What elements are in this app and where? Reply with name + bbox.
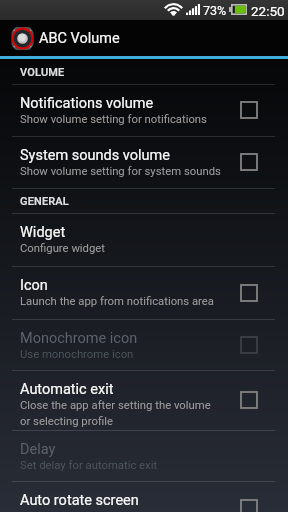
button[interactable]: Auto rotate screen xyxy=(0,482,288,512)
staticText: Notifications volume xyxy=(20,95,154,112)
staticText: Show volume setting for system sounds xyxy=(20,165,225,178)
staticText: Auto rotate screen xyxy=(20,492,139,509)
button[interactable]: Automatic exit xyxy=(240,391,258,409)
staticText: Set delay for automatic exit xyxy=(20,459,225,472)
staticText: VOLUME xyxy=(20,66,65,79)
button[interactable]: System sounds volume xyxy=(240,153,258,171)
button[interactable]: ABC Volume xyxy=(0,20,288,56)
other: Battery 73 percent xyxy=(229,4,247,15)
staticText: Widget xyxy=(20,224,66,241)
other: Wi-Fi signal xyxy=(165,3,183,16)
button[interactable]: Monochrome icon xyxy=(240,336,258,354)
button[interactable]: Automatic exit xyxy=(0,371,288,430)
staticText: System sounds volume xyxy=(20,147,170,164)
staticText: Launch the app from notifications area xyxy=(20,295,225,308)
button[interactable]: Auto rotate screen xyxy=(240,499,258,512)
staticText: Show volume setting for notifications xyxy=(20,113,225,126)
button[interactable]: Notifications volume xyxy=(0,85,288,136)
staticText: Configure widget xyxy=(20,242,225,255)
button[interactable]: Monochrome icon xyxy=(0,320,288,370)
button[interactable]: Icon xyxy=(240,284,258,302)
staticText: Monochrome icon xyxy=(20,330,138,347)
staticText: GENERAL xyxy=(20,195,69,208)
staticText: 22:50 xyxy=(251,3,285,19)
staticText: Close the app after setting the volume o… xyxy=(20,399,220,427)
button[interactable]: Delay xyxy=(0,431,288,481)
button[interactable]: Notifications volume xyxy=(240,101,258,119)
button[interactable]: System sounds volume xyxy=(0,137,288,188)
staticText: Icon xyxy=(20,277,48,294)
button[interactable]: Widget xyxy=(0,214,288,266)
staticText: Automatic exit xyxy=(20,381,114,398)
staticText: 73% xyxy=(203,3,227,18)
button[interactable]: Icon xyxy=(0,267,288,319)
staticText: ABC Volume xyxy=(39,30,120,47)
staticText: Use monochrome icon xyxy=(20,348,225,361)
other: Cellular signal xyxy=(186,4,200,15)
staticText: Delay xyxy=(20,441,56,458)
